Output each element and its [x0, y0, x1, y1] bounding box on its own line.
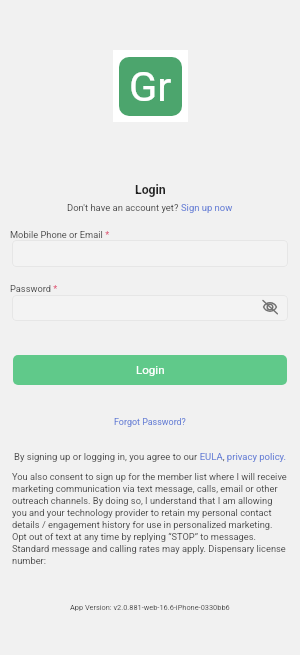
staticText: Mobile Phone or Email * [10, 229, 110, 240]
button[interactable] [12, 240, 288, 267]
staticText: outreach channels. By doing so, I unders… [12, 495, 273, 506]
button[interactable]: Sign up now [181, 202, 233, 213]
staticText: Don't have an account yet? [67, 202, 181, 213]
staticText: Login [135, 183, 166, 197]
staticText: details / engagement history for use in … [12, 519, 273, 530]
staticText: Opt out of text at any time by replying … [12, 531, 256, 542]
staticText: number: [12, 555, 46, 566]
staticText: Login [136, 363, 165, 377]
button[interactable]: Show password [259, 296, 281, 318]
button[interactable]: Show password [12, 295, 288, 321]
staticText: Password * [10, 283, 58, 294]
staticText: You also consent to sign up for the memb… [12, 471, 287, 482]
staticText: App Version: v2.0.881-web-16.6-iPhone-03… [70, 603, 230, 612]
button[interactable]: Login [13, 355, 287, 385]
staticText: Gr [129, 62, 172, 111]
staticText: Standard message and calling rates may a… [12, 543, 286, 554]
staticText: By signing up or logging in, you agree t… [14, 451, 287, 462]
staticText: marketing communication via text message… [12, 483, 278, 494]
staticText: you and your technology provider to reta… [12, 507, 272, 518]
button[interactable]: Forgot Password? [114, 417, 186, 427]
